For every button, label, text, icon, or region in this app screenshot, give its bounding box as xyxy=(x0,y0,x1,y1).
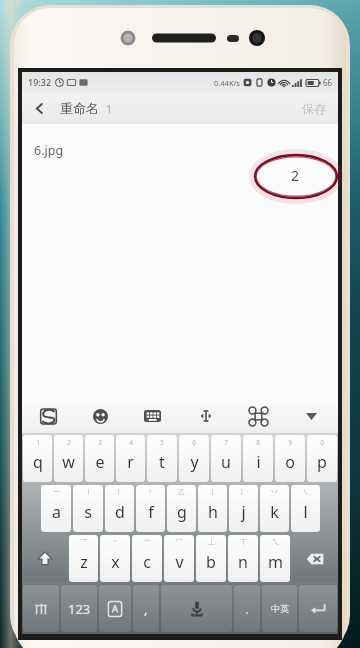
staticText: 19:32 xyxy=(28,76,52,88)
button[interactable]: Keyboard layout xyxy=(126,399,179,433)
staticText: 5 xyxy=(160,438,164,447)
staticText: 冖 xyxy=(176,538,183,546)
staticText: 一 xyxy=(53,488,60,496)
button[interactable]: 丿 xyxy=(105,485,134,532)
staticText: 冫 xyxy=(240,488,247,496)
staticText: t xyxy=(159,451,165,473)
button[interactable]: 保存 xyxy=(290,92,338,124)
button[interactable]: Space xyxy=(161,585,232,632)
button[interactable]: 亅 xyxy=(198,485,227,532)
button[interactable]: Emoji xyxy=(74,399,126,433)
staticText: s xyxy=(84,501,92,523)
staticText: h xyxy=(208,501,218,523)
staticText: 中英 xyxy=(271,603,289,614)
staticText: 乀 xyxy=(272,538,279,546)
staticText: 丅 xyxy=(240,538,247,546)
staticText: 66 xyxy=(323,77,333,88)
button[interactable]: Back xyxy=(22,92,56,124)
button[interactable]: Enter xyxy=(299,585,337,632)
button[interactable]: 冫 xyxy=(229,485,258,532)
button[interactable]: . xyxy=(234,585,260,632)
staticText: 丶 xyxy=(147,488,154,496)
staticText: f xyxy=(148,501,154,523)
button[interactable]: , xyxy=(133,585,159,632)
button[interactable]: 2 xyxy=(54,435,83,482)
staticText: w xyxy=(62,451,75,473)
button[interactable]: 丅 xyxy=(228,535,258,582)
staticText: k xyxy=(270,501,279,523)
button[interactable]: 0 xyxy=(307,435,337,482)
staticText: 0.44K/s xyxy=(214,78,240,88)
staticText: 丿 xyxy=(116,488,123,496)
button[interactable]: More tools xyxy=(232,399,285,433)
button[interactable]: Backspace xyxy=(292,535,337,582)
staticText: 亠 xyxy=(144,538,151,546)
button[interactable]: Input language xyxy=(99,585,131,632)
staticText: 6.jpg xyxy=(34,142,64,159)
button[interactable]: 乙 xyxy=(167,485,196,532)
button[interactable]: 乀 xyxy=(260,535,290,582)
staticText: ㇏ xyxy=(302,488,309,496)
staticText: 8 xyxy=(256,438,260,447)
button[interactable]: Sogou input xyxy=(22,399,74,433)
button[interactable]: 7 xyxy=(211,435,241,482)
staticText: j xyxy=(241,501,246,523)
staticText: 丄 xyxy=(208,538,215,546)
button[interactable]: 亠 xyxy=(132,535,162,582)
staticText: l xyxy=(303,501,308,523)
button[interactable]: 1 xyxy=(23,435,52,482)
button[interactable]: 中英 xyxy=(262,585,297,632)
staticText: p xyxy=(317,451,327,473)
staticText: x xyxy=(111,551,120,573)
button[interactable]: 4 xyxy=(116,435,145,482)
staticText: d xyxy=(115,501,125,523)
staticText: e xyxy=(95,451,105,473)
staticText: 0 xyxy=(320,438,324,447)
staticText: q xyxy=(33,451,43,473)
button[interactable]: 丶 xyxy=(136,485,165,532)
staticText: y xyxy=(190,451,199,473)
staticText: u xyxy=(221,451,231,473)
staticText: m xyxy=(268,551,283,573)
button[interactable]: ㇀ xyxy=(100,535,130,582)
button[interactable]: 一 xyxy=(41,485,71,532)
staticText: a xyxy=(52,501,61,523)
staticText: 1 xyxy=(36,438,40,447)
button[interactable]: 3 xyxy=(85,435,114,482)
staticText: v xyxy=(175,551,184,573)
staticText: 2 xyxy=(67,438,71,447)
button[interactable]: 9 xyxy=(275,435,305,482)
staticText: 乙 xyxy=(178,488,185,496)
staticText: 4 xyxy=(129,438,133,447)
staticText: , xyxy=(144,600,148,618)
staticText: 乛 xyxy=(80,538,87,546)
button[interactable]: 8 xyxy=(243,435,273,482)
button[interactable]: 乛 xyxy=(69,535,98,582)
staticText: . xyxy=(245,600,249,618)
button[interactable]: ㇏ xyxy=(291,485,320,532)
staticText: r xyxy=(127,451,134,473)
button[interactable]: 6 xyxy=(179,435,209,482)
button[interactable]: Hide keyboard xyxy=(285,399,338,433)
staticText: 丷 xyxy=(271,488,278,496)
staticText: 丨 xyxy=(85,488,92,496)
staticText: o xyxy=(285,451,295,473)
button[interactable]: Shift xyxy=(23,535,67,582)
button[interactable]: Cursor move xyxy=(179,399,232,433)
staticText: i xyxy=(256,451,261,473)
staticText: n xyxy=(238,551,248,573)
button[interactable]: 冖 xyxy=(164,535,194,582)
staticText: 6 xyxy=(192,438,196,447)
button[interactable]: 丷 xyxy=(260,485,289,532)
button[interactable]: 丄 xyxy=(196,535,226,582)
staticText: 9 xyxy=(288,438,292,447)
button[interactable]: Symbols xyxy=(23,585,59,632)
button[interactable]: 5 xyxy=(147,435,177,482)
staticText: g xyxy=(177,501,187,523)
staticText: z xyxy=(80,551,88,573)
staticText: 7 xyxy=(224,438,228,447)
button[interactable]: 123 xyxy=(61,585,97,632)
button[interactable]: 6.jpg xyxy=(22,124,338,176)
staticText: 重命名 xyxy=(60,100,99,116)
button[interactable]: 丨 xyxy=(73,485,103,532)
